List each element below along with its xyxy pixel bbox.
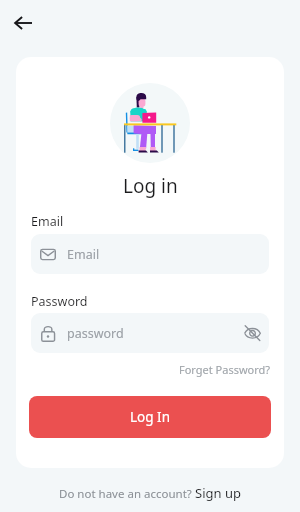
staticText: Log In [130,408,170,426]
staticText: Do not have an account? [59,486,195,502]
staticText: Sign up [195,484,241,502]
staticText: Email [31,213,64,230]
staticText: Forget Password? [179,362,271,377]
staticText: password [67,325,124,342]
button[interactable]: Forget Password? [178,360,272,379]
button[interactable]: Show password [240,321,264,345]
button[interactable]: password [31,313,269,353]
staticText: Password [31,293,88,310]
button[interactable]: Sign up [195,484,241,502]
button[interactable]: Email [31,234,269,274]
staticText: Email [67,246,100,263]
staticText: Log in [123,173,178,199]
button[interactable]: Back [8,8,38,38]
button[interactable]: Log In [29,396,271,438]
